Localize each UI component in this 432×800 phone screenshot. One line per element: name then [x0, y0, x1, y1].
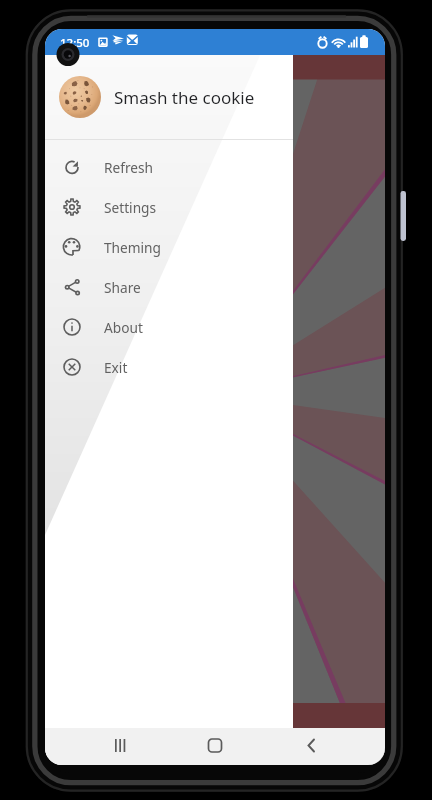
- button[interactable]: Theming: [45, 227, 293, 267]
- staticText: Theming: [104, 238, 161, 257]
- button[interactable]: Share: [45, 267, 293, 307]
- staticText: Exit: [104, 358, 128, 377]
- staticText: Smash the cookie: [114, 86, 255, 109]
- staticText: About: [104, 318, 143, 337]
- button[interactable]: Settings: [45, 187, 293, 227]
- other: System navigation: [45, 728, 385, 765]
- staticText: Refresh: [104, 158, 154, 177]
- button[interactable]: Exit: [45, 347, 293, 387]
- button[interactable]: Smash the cookie: [45, 55, 293, 139]
- button[interactable]: Refresh: [45, 147, 293, 187]
- staticText: Settings: [104, 198, 157, 217]
- staticText: 12:50: [60, 35, 90, 51]
- staticText: Share: [104, 278, 141, 297]
- button[interactable]: About: [45, 307, 293, 347]
